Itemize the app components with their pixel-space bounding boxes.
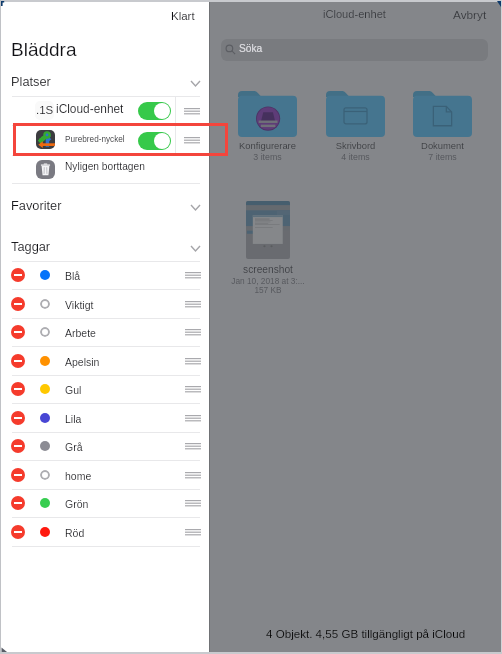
button[interactable]: Remove Lila <box>0 404 209 432</box>
staticText: Röd <box>65 527 85 539</box>
staticText: 3 items <box>225 152 310 162</box>
button[interactable]: Purebred-nyckel <box>0 126 209 155</box>
other: Reorder <box>185 358 201 365</box>
button[interactable]: Remove Gul <box>0 375 209 403</box>
button[interactable]: Remove Blå <box>0 261 209 289</box>
staticText: Bläddra <box>11 39 77 60</box>
button[interactable]: Remove Apelsin <box>0 347 209 375</box>
staticText: Blå <box>65 270 81 282</box>
staticText: iCloud-enhet <box>323 8 386 20</box>
button[interactable]: Klart <box>167 8 199 25</box>
other: Reorder <box>185 500 201 507</box>
button[interactable]: Konfigurerare <box>225 91 310 162</box>
other: Reorder <box>185 443 201 450</box>
staticText: Gul <box>65 384 82 396</box>
button[interactable]: Nyligen borttagen <box>0 156 209 184</box>
other: Reorder <box>185 329 201 336</box>
button[interactable]: Remove Arbete <box>0 318 209 346</box>
button[interactable]: Search <box>221 39 488 61</box>
button[interactable]: Favoriter <box>0 197 209 217</box>
other: Remove home <box>11 468 25 482</box>
staticText: Arbete <box>65 327 96 339</box>
button[interactable]: Remove home <box>0 461 209 489</box>
staticText: Dokument <box>400 140 485 151</box>
other: Reorder <box>184 137 200 144</box>
other: Remove Arbete <box>11 325 25 339</box>
staticText: iCloud-enhet <box>56 102 124 115</box>
other: Remove Apelsin <box>11 354 25 368</box>
staticText: Taggar <box>11 239 51 253</box>
other: Remove Grå <box>11 439 25 453</box>
button[interactable]: Dokument <box>400 91 485 162</box>
other: Remove Röd <box>11 525 25 539</box>
button[interactable]: Platser <box>0 73 209 93</box>
other: Reorder <box>185 272 201 279</box>
other: Remove Grön <box>11 496 25 510</box>
staticText: .1S <box>36 104 54 117</box>
staticText: Purebred-nyckel <box>65 135 125 144</box>
staticText: 4 Objekt. 4,55 GB tillgängligt på iCloud <box>266 627 466 640</box>
button[interactable]: Remove Grön <box>0 489 209 517</box>
other: Reorder <box>185 301 201 308</box>
staticText: Söka <box>239 43 263 54</box>
staticText: 4 items <box>313 152 398 162</box>
button[interactable]: Toggle <box>138 132 171 150</box>
other: Remove Gul <box>11 382 25 396</box>
button[interactable]: Remove Viktigt <box>0 290 209 318</box>
button[interactable]: Avbryt <box>453 8 487 21</box>
staticText: 7 items <box>400 152 485 162</box>
button[interactable]: .1S <box>0 97 209 125</box>
staticText: home <box>65 470 92 482</box>
other: Remove Blå <box>11 268 25 282</box>
other: Reorder <box>184 108 200 115</box>
staticText: Lila <box>65 413 82 425</box>
button[interactable]: Toggle <box>138 102 171 120</box>
staticText: Skrivbord <box>313 140 398 151</box>
button[interactable]: Remove Röd <box>0 518 209 546</box>
staticText: Jan 10, 2018 at 3:... <box>226 276 310 285</box>
button[interactable]: screenshot <box>226 201 310 294</box>
staticText: Apelsin <box>65 356 100 368</box>
staticText: Favoriter <box>11 198 62 212</box>
other: Reorder <box>185 386 201 393</box>
other: Remove Viktigt <box>11 297 25 311</box>
staticText: Konfigurerare <box>225 140 310 151</box>
staticText: screenshot <box>226 264 310 275</box>
button[interactable]: Remove Grå <box>0 432 209 460</box>
staticText: Platser <box>11 74 51 88</box>
other: Reorder <box>185 415 201 422</box>
staticText: Grön <box>65 498 89 510</box>
button[interactable]: Skrivbord <box>313 91 398 162</box>
staticText: Viktigt <box>65 299 94 311</box>
other: Search <box>225 44 236 55</box>
other: Reorder <box>185 529 201 536</box>
other: Remove Lila <box>11 411 25 425</box>
staticText: Nyligen borttagen <box>65 161 145 172</box>
other: Reorder <box>185 472 201 479</box>
staticText: 157 KB <box>226 285 310 294</box>
staticText: Grå <box>65 441 83 453</box>
button[interactable]: Taggar <box>0 238 209 258</box>
staticText: Klart <box>171 10 195 23</box>
